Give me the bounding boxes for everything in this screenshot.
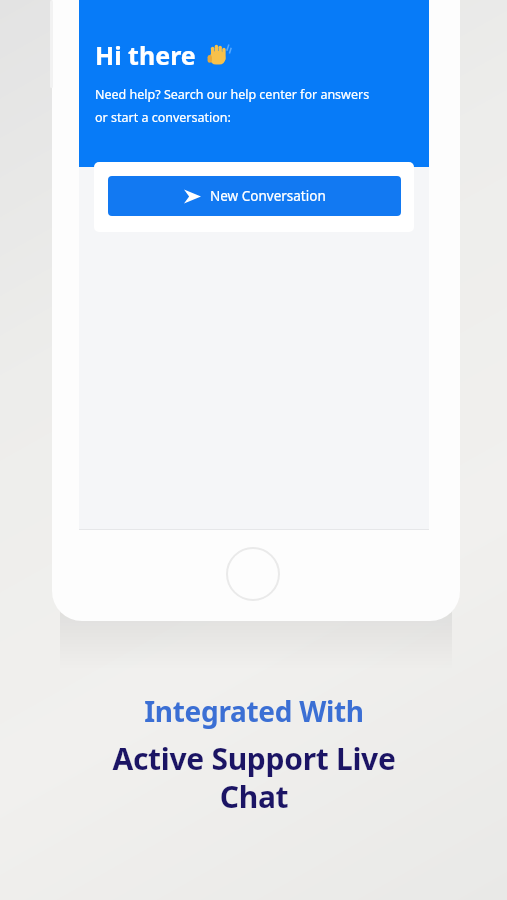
staticText: Hi there [95,38,196,72]
staticText: Integrated With [144,692,364,730]
staticText: Need help? Search our help center for an… [95,86,370,126]
button[interactable]: Home [226,547,280,601]
button[interactable]: New Conversation [108,176,401,216]
staticText: Active Support Live Chat [112,738,396,817]
staticText: New Conversation [210,187,326,205]
